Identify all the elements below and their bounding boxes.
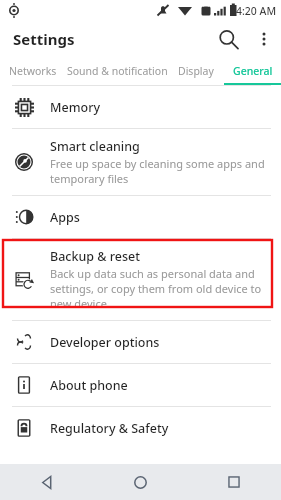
- button[interactable]: Smart cleaning: [0, 129, 281, 195]
- staticText: Settings: [13, 29, 75, 49]
- button[interactable]: Home: [93, 464, 187, 500]
- button[interactable]: General: [224, 57, 281, 85]
- button[interactable]: Search: [211, 22, 245, 56]
- staticText: Developer options: [50, 334, 160, 351]
- button[interactable]: Display: [178, 57, 214, 85]
- button[interactable]: Back: [0, 464, 93, 500]
- staticText: Memory: [50, 99, 101, 116]
- staticText: Apps: [50, 209, 80, 226]
- button[interactable]: Regulatory & Safety: [0, 407, 281, 449]
- button[interactable]: Memory: [0, 86, 281, 128]
- staticText: Regulatory & Safety: [50, 420, 169, 437]
- staticText: Sound & notification: [67, 64, 168, 78]
- button[interactable]: Apps: [0, 196, 281, 238]
- staticText: 4:20 AM: [236, 4, 277, 18]
- button[interactable]: Sound & notification: [67, 57, 168, 85]
- button[interactable]: About phone: [0, 364, 281, 406]
- button[interactable]: More options: [247, 22, 281, 56]
- button[interactable]: Recent apps: [187, 464, 281, 500]
- staticText: Display: [178, 64, 214, 78]
- button[interactable]: Networks: [9, 57, 57, 85]
- button[interactable]: Backup & reset: [0, 239, 281, 320]
- staticText: About phone: [50, 377, 128, 394]
- button[interactable]: Developer options: [0, 321, 281, 363]
- staticText: Free up space by cleaning some apps and …: [50, 156, 267, 186]
- staticText: Backup & reset: [50, 248, 141, 265]
- staticText: Back up data such as personal data and s…: [50, 266, 267, 311]
- staticText: General: [233, 64, 273, 78]
- staticText: Networks: [9, 64, 57, 78]
- staticText: Smart cleaning: [50, 138, 140, 155]
